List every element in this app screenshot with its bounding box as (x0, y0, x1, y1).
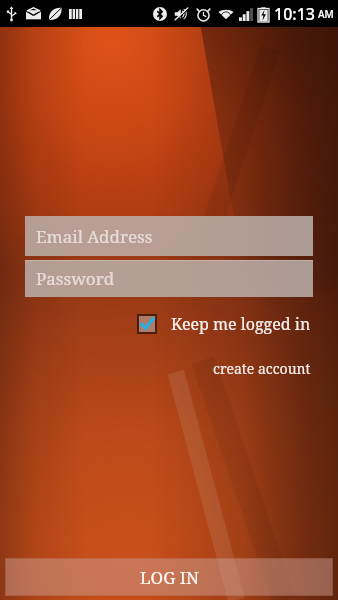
staticText: create account (213, 359, 311, 378)
button[interactable]: Email Address (25, 216, 313, 256)
button[interactable]: Keep me logged in (138, 313, 311, 335)
button[interactable]: Password (25, 260, 313, 297)
staticText: Keep me logged in (171, 313, 311, 335)
staticText: Password (36, 267, 115, 290)
staticText: Email Address (36, 225, 153, 248)
button[interactable]: LOG IN (5, 558, 333, 596)
staticText: LOG IN (140, 566, 199, 589)
button[interactable]: create account (213, 359, 311, 378)
staticText: 10:13 (274, 3, 315, 25)
staticText: AM (318, 7, 334, 21)
